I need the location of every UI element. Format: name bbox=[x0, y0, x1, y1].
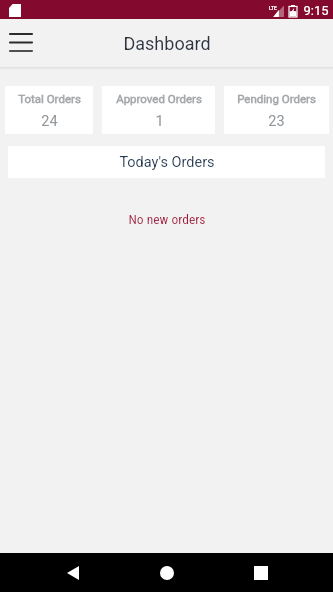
staticText: Total Orders bbox=[18, 92, 81, 105]
button[interactable]: Back bbox=[49, 553, 97, 592]
staticText: 9:15 bbox=[303, 3, 329, 18]
button[interactable]: Total Orders bbox=[5, 86, 93, 134]
button[interactable]: Home bbox=[143, 553, 191, 592]
button[interactable]: Today's Orders bbox=[8, 146, 325, 178]
staticText: 1 bbox=[155, 113, 164, 130]
button[interactable]: Pending Orders bbox=[224, 86, 329, 134]
button[interactable]: Recent apps bbox=[237, 553, 285, 592]
staticText: Approved Orders bbox=[116, 92, 202, 105]
staticText: 24 bbox=[41, 113, 58, 130]
staticText: Dashboard bbox=[123, 33, 211, 54]
staticText: LTE bbox=[269, 5, 277, 11]
staticText: No new orders bbox=[128, 211, 206, 227]
staticText: Today's Orders bbox=[119, 154, 215, 171]
button[interactable]: Approved Orders bbox=[102, 86, 215, 134]
button[interactable]: Open navigation menu bbox=[0, 21, 42, 63]
staticText: 23 bbox=[268, 113, 285, 130]
staticText: Pending Orders bbox=[237, 92, 316, 105]
